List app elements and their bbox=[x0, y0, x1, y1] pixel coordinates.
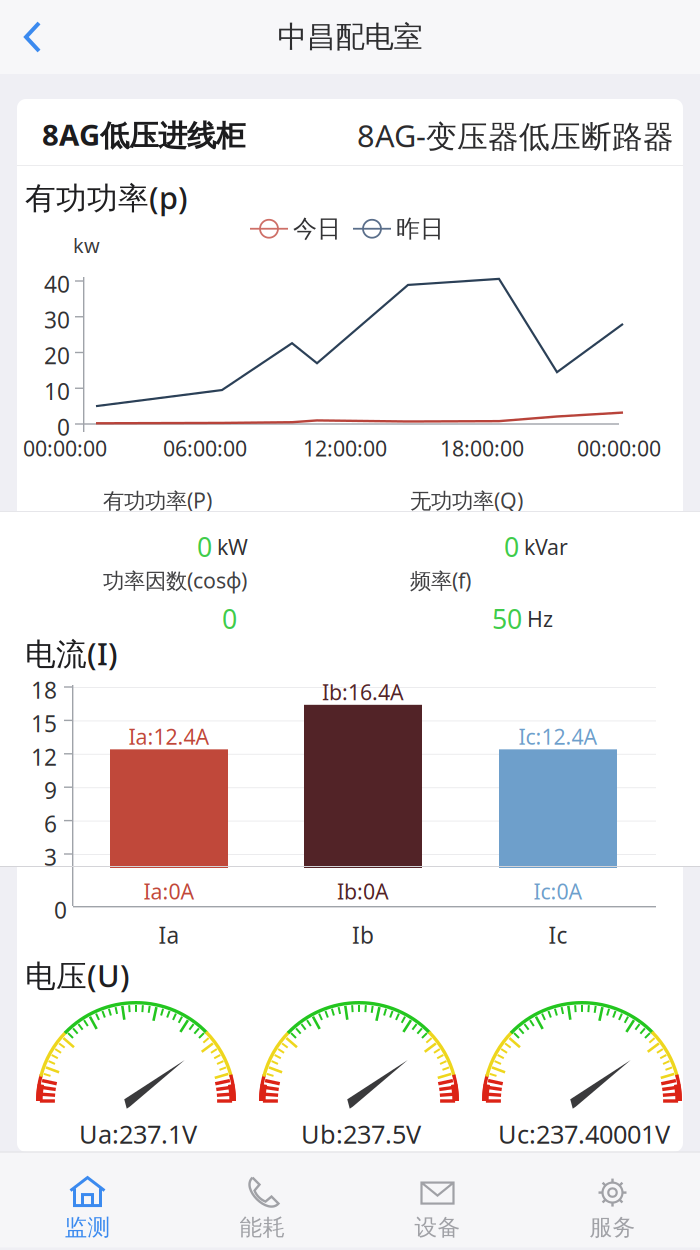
staticText: 0 bbox=[57, 412, 70, 442]
staticText: 50 bbox=[492, 601, 522, 636]
button[interactable]: 设备 bbox=[350, 1164, 525, 1250]
staticText: 有功功率(p) bbox=[25, 177, 188, 218]
staticText: 10 bbox=[44, 376, 70, 406]
staticText: kVar bbox=[524, 532, 568, 561]
staticText: 功率因数(cosφ) bbox=[103, 566, 247, 594]
staticText: 0 bbox=[54, 895, 67, 925]
staticText: Uc:237.40001V bbox=[498, 1117, 670, 1151]
staticText: Ic bbox=[548, 920, 567, 950]
staticText: 9 bbox=[44, 775, 57, 805]
staticText: 12 bbox=[31, 742, 57, 772]
staticText: 00:00:00 bbox=[23, 434, 107, 462]
staticText: 中昌配电室 bbox=[277, 19, 422, 55]
staticText: 今日 bbox=[293, 214, 341, 243]
staticText: 6 bbox=[44, 809, 57, 839]
staticText: 电流(I) bbox=[25, 633, 118, 674]
staticText: 18 bbox=[31, 675, 57, 705]
staticText: 12:00:00 bbox=[303, 434, 387, 462]
staticText: 0 bbox=[197, 529, 212, 564]
staticText: 3 bbox=[44, 842, 57, 872]
staticText: 30 bbox=[44, 305, 70, 335]
staticText: Ic:0A bbox=[533, 877, 582, 905]
staticText: Ib:16.4A bbox=[322, 678, 404, 706]
staticText: 06:00:00 bbox=[163, 434, 247, 462]
staticText: 40 bbox=[44, 269, 70, 299]
button[interactable]: 监测 bbox=[0, 1164, 175, 1250]
staticText: 0 bbox=[222, 601, 237, 636]
button[interactable]: 返回 bbox=[0, 0, 64, 74]
staticText: 电压(U) bbox=[25, 955, 130, 996]
staticText: 服务 bbox=[589, 1214, 635, 1241]
staticText: 设备 bbox=[414, 1214, 460, 1241]
staticText: Ia bbox=[158, 920, 179, 950]
staticText: Ib bbox=[352, 920, 374, 950]
staticText: Ia:0A bbox=[143, 877, 194, 905]
staticText: Ic:12.4A bbox=[518, 722, 597, 751]
button[interactable]: 服务 bbox=[525, 1164, 700, 1250]
button[interactable]: 能耗 bbox=[175, 1164, 350, 1250]
staticText: kW bbox=[217, 532, 248, 561]
staticText: 能耗 bbox=[239, 1214, 285, 1241]
staticText: 8AG-变压器低压断路器 bbox=[357, 115, 674, 156]
staticText: 0 bbox=[504, 529, 519, 564]
staticText: 18:00:00 bbox=[440, 434, 524, 462]
staticText: 00:00:00 bbox=[577, 434, 661, 462]
staticText: 有功功率(P) bbox=[103, 486, 212, 514]
staticText: kw bbox=[73, 232, 100, 259]
staticText: 15 bbox=[31, 708, 57, 738]
staticText: 20 bbox=[44, 340, 70, 371]
staticText: Ua:237.1V bbox=[79, 1117, 197, 1151]
staticText: 8AG低压进线柜 bbox=[42, 115, 245, 154]
staticText: Ia:12.4A bbox=[128, 722, 209, 751]
staticText: 昨日 bbox=[396, 214, 444, 243]
staticText: 监测 bbox=[64, 1214, 110, 1241]
staticText: 频率(f) bbox=[410, 566, 471, 594]
staticText: Hz bbox=[527, 604, 553, 633]
staticText: 无功功率(Q) bbox=[410, 486, 523, 514]
staticText: Ib:0A bbox=[337, 877, 389, 905]
staticText: Ub:237.5V bbox=[301, 1117, 421, 1151]
